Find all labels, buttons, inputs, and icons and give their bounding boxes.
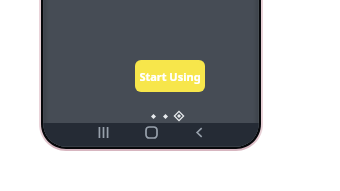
button[interactable]: Recent apps bbox=[90, 119, 116, 145]
staticText: Start Using bbox=[139, 69, 201, 84]
button[interactable]: Back bbox=[186, 119, 212, 145]
button[interactable]: Home bbox=[138, 119, 164, 145]
button[interactable]: Start Using bbox=[135, 60, 205, 92]
